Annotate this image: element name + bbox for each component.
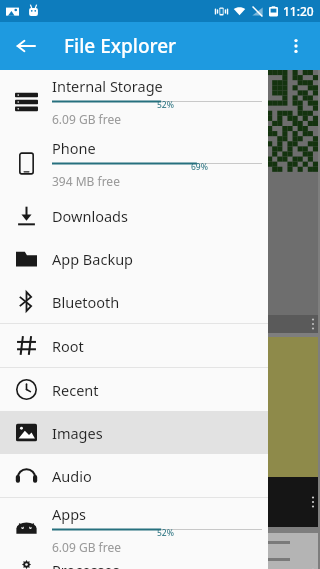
staticText: Phone: [52, 138, 96, 158]
staticText: Images: [52, 423, 103, 443]
staticText: 394 MB free: [52, 173, 120, 189]
button[interactable]: Bluetooth: [0, 280, 268, 323]
button[interactable]: Recent: [0, 368, 268, 411]
button[interactable]: More options: [274, 24, 318, 68]
staticText: 52%: [157, 527, 174, 538]
button[interactable]: Processes: [0, 560, 268, 569]
button[interactable]: Root: [0, 324, 268, 367]
staticText: 69%: [191, 161, 208, 172]
button[interactable]: Internal Storage: [0, 70, 268, 132]
staticText: 52%: [157, 99, 174, 110]
staticText: Apps: [52, 504, 87, 524]
button[interactable]: Downloads: [0, 194, 268, 237]
button[interactable]: Audio: [0, 454, 268, 497]
staticText: Root: [52, 336, 84, 356]
button[interactable]: Back: [4, 24, 48, 68]
staticText: Downloads: [52, 206, 128, 226]
staticText: Audio: [52, 466, 92, 486]
staticText: 6.09 GB free: [52, 111, 121, 127]
staticText: Internal Storage: [52, 76, 163, 96]
staticText: Recent: [52, 380, 99, 400]
staticText: 11:20: [283, 3, 314, 19]
staticText: Processes: [52, 560, 120, 569]
staticText: File Explorer: [64, 33, 177, 59]
staticText: Bluetooth: [52, 292, 120, 312]
button[interactable]: App Backup: [0, 237, 268, 280]
staticText: 6.09 GB free: [52, 539, 121, 555]
button[interactable]: Images: [0, 411, 268, 454]
staticText: App Backup: [52, 249, 134, 269]
button[interactable]: Phone: [0, 132, 268, 194]
button[interactable]: Apps: [0, 498, 268, 560]
